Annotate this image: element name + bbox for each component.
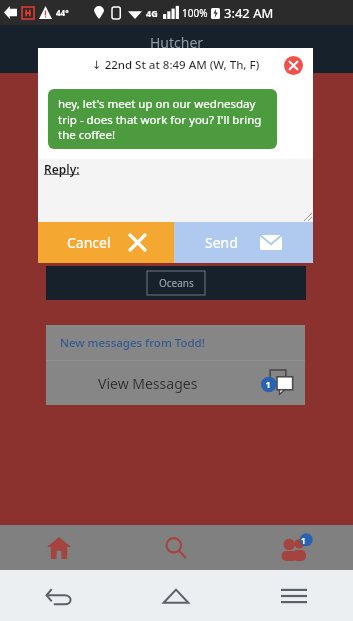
button[interactable]: Friends (235, 525, 353, 570)
staticText: 1 (301, 535, 306, 546)
button[interactable]: Home (0, 525, 117, 570)
button[interactable]: Cancel (38, 222, 174, 263)
staticText: View Messages (98, 374, 198, 393)
staticText: ↓ 22nd St at 8:49 AM (W, Th, F) (92, 57, 260, 73)
staticText: 1 (265, 378, 271, 390)
button[interactable]: Search (117, 525, 235, 570)
button[interactable]: Send (174, 222, 313, 263)
staticText: Hutcher (150, 33, 204, 52)
staticText: Oceans (159, 276, 194, 290)
staticText: hey, let's meet up on our wednesday trip… (58, 96, 267, 142)
staticText: 4G (146, 7, 158, 19)
button[interactable]: View Messages (46, 361, 305, 405)
staticText: Reply: (44, 161, 80, 177)
button[interactable]: Close (283, 55, 303, 75)
button[interactable]: Back (0, 570, 117, 621)
staticText: 100% (182, 6, 208, 20)
button[interactable]: Home (117, 570, 235, 621)
staticText: Send (205, 233, 238, 252)
staticText: 3:42 AM (224, 4, 274, 22)
staticText: Cancel (67, 233, 111, 252)
staticText: New messages from Todd! (60, 335, 205, 351)
staticText: 44° (56, 7, 69, 18)
button[interactable]: Recents (235, 570, 353, 621)
